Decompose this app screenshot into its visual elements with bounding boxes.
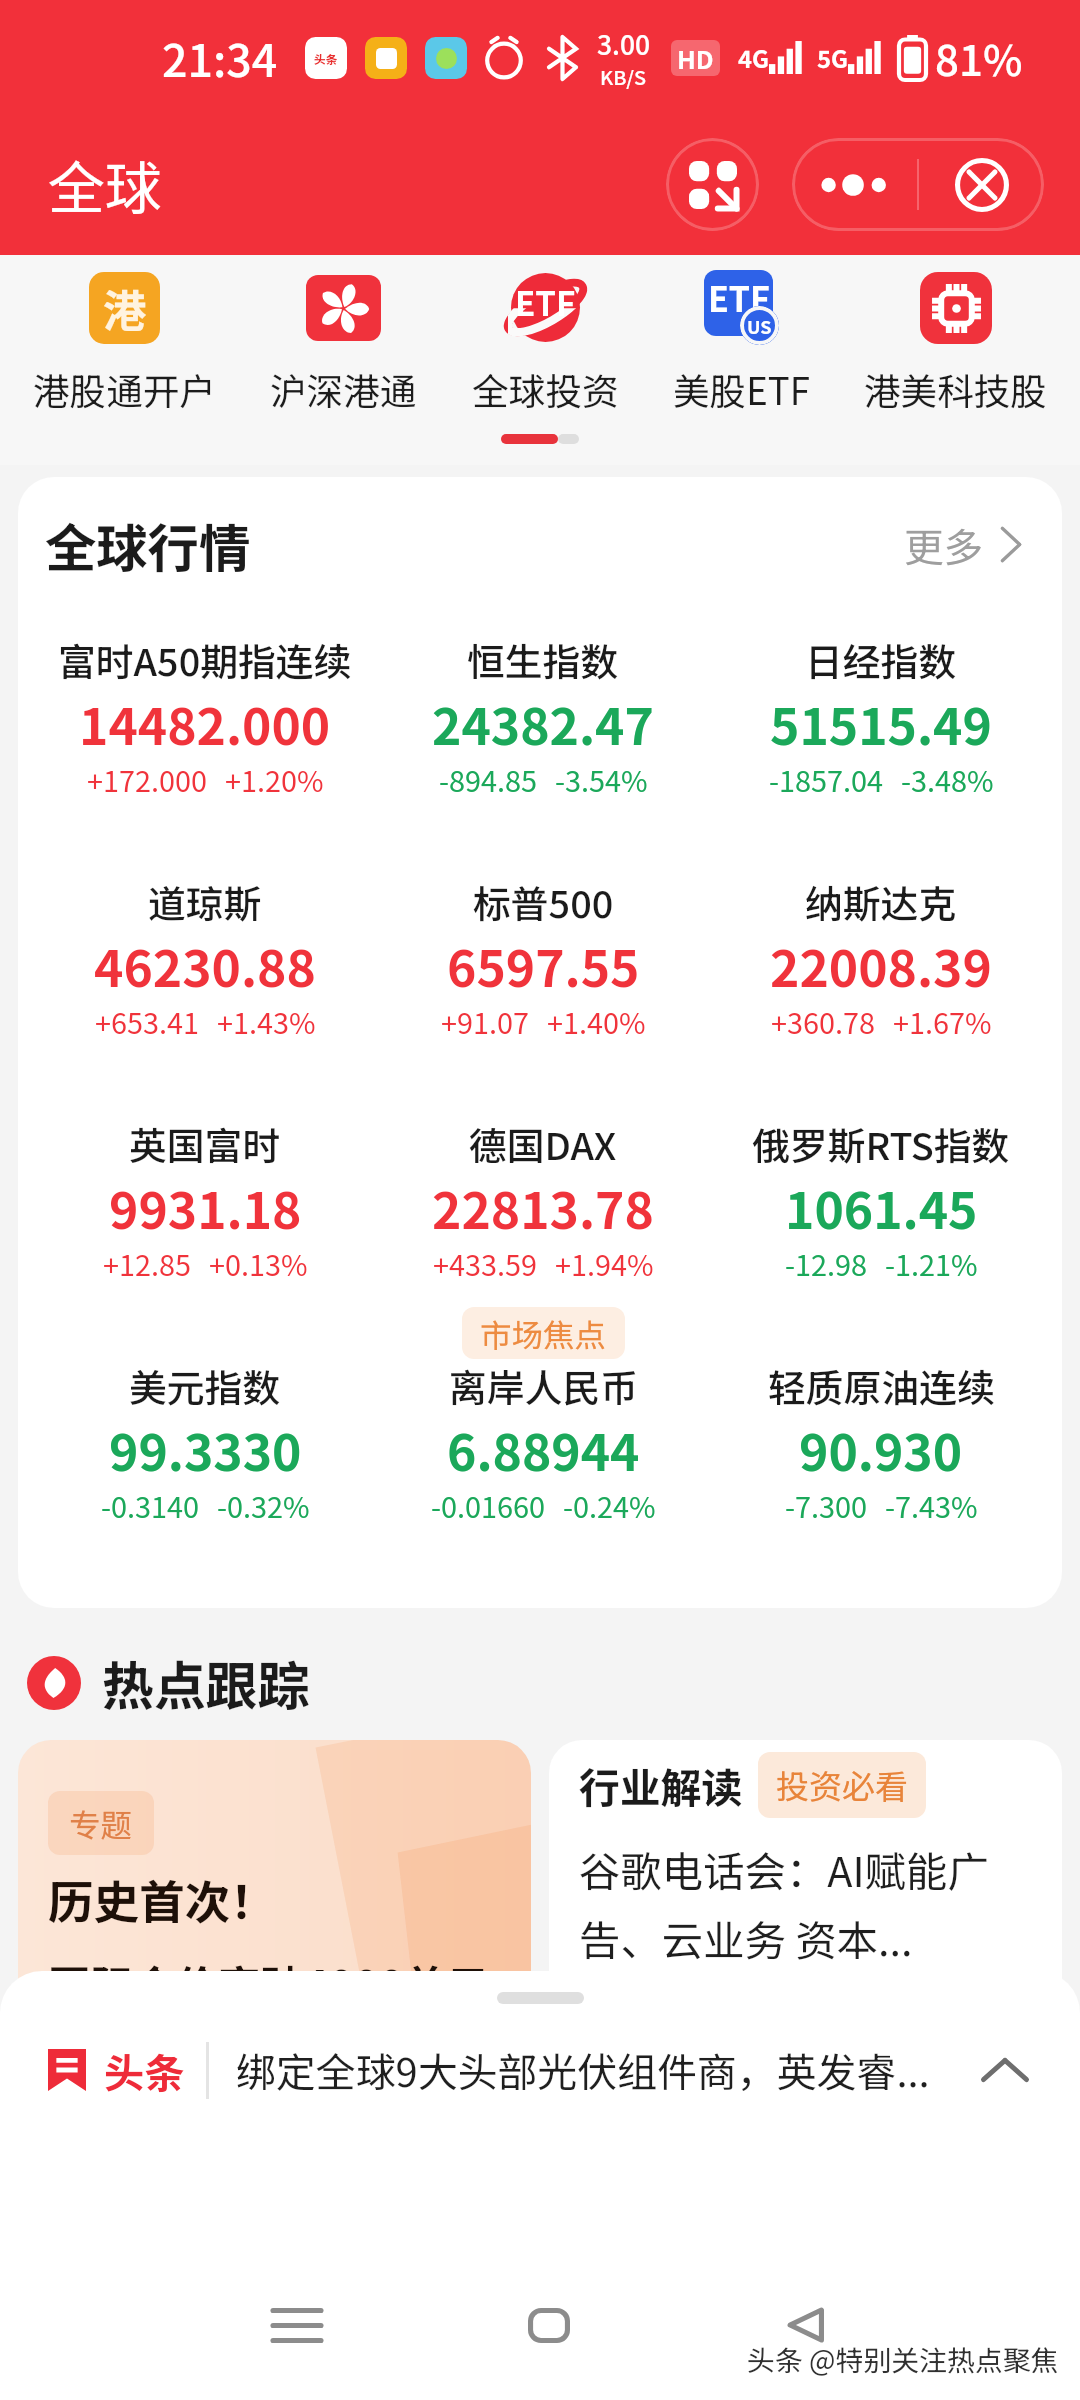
staticText: 22813.78 — [432, 1171, 654, 1243]
staticText: 美股ETF — [673, 363, 810, 416]
button[interactable]: 英国富时 — [36, 1116, 374, 1285]
staticText: 更多 — [904, 516, 984, 573]
button[interactable]: Close — [919, 138, 1044, 231]
staticText: KB/S — [600, 62, 647, 91]
staticText: 标普500 — [473, 874, 614, 929]
staticText: -7.43% — [885, 1485, 978, 1527]
button[interactable]: 标普500 — [374, 874, 712, 1043]
staticText: -1.21% — [885, 1243, 978, 1285]
staticText: 投资必看 — [776, 1761, 908, 1809]
staticText: 沪深港通 — [270, 363, 417, 416]
staticText: -0.3140 — [101, 1485, 199, 1527]
staticText: 日经指数 — [805, 632, 957, 687]
button[interactable]: 热点跟踪 — [27, 1645, 310, 1720]
staticText: +172.000 — [87, 759, 207, 801]
staticText: -7.300 — [785, 1485, 867, 1527]
staticText: 德国DAX — [469, 1116, 617, 1171]
button[interactable]: 头条 — [0, 2037, 1080, 2103]
staticText: 热点跟踪 — [102, 1645, 310, 1720]
button[interactable]: Back — [759, 2283, 849, 2367]
button[interactable]: More options — [792, 138, 917, 231]
staticText: 谷歌电话会：AI赋能广告、云业务 资本... — [579, 1839, 1044, 1967]
staticText: 港美科技股 — [864, 363, 1047, 416]
staticText: 3.00 — [597, 24, 650, 62]
button[interactable]: 离岸人民币 — [374, 1358, 712, 1527]
button[interactable]: 德国DAX — [374, 1116, 712, 1285]
button[interactable]: 纳斯达克 — [712, 874, 1050, 1043]
button[interactable]: 俄罗斯RTS指数 — [712, 1116, 1050, 1285]
button[interactable]: 沪深港通 — [261, 270, 426, 416]
staticText: 4G — [738, 41, 769, 75]
staticText: -894.85 — [439, 759, 537, 801]
staticText: 美元指数 — [129, 1358, 281, 1413]
staticText: -3.48% — [901, 759, 994, 801]
staticText: -1857.04 — [769, 759, 883, 801]
staticText: +1.67% — [893, 1001, 992, 1043]
staticText: +0.13% — [209, 1243, 308, 1285]
button[interactable]: 美元指数 — [36, 1358, 374, 1527]
staticText: -12.98 — [785, 1243, 867, 1285]
staticText: +1.20% — [225, 759, 324, 801]
staticText: 恒生指数 — [467, 632, 619, 687]
staticText: 英国富时 — [129, 1116, 281, 1171]
staticText: +433.59 — [433, 1243, 537, 1285]
button[interactable]: Home — [504, 2283, 594, 2367]
button[interactable]: 港美科技股 — [855, 270, 1056, 416]
button[interactable]: 专题 — [18, 1740, 531, 2115]
staticText: 头条 @特别关注热点聚焦 — [747, 2339, 1059, 2379]
staticText: 绑定全球9大头部光伏组件商，英发睿... — [236, 2041, 954, 2099]
staticText: -3.54% — [555, 759, 648, 801]
staticText: 6597.55 — [447, 929, 640, 1001]
staticText: +653.41 — [95, 1001, 199, 1043]
button[interactable]: 日经指数 — [712, 632, 1050, 801]
button[interactable]: 富时A50期指连续 — [36, 632, 374, 801]
staticText: 道琼斯 — [148, 874, 262, 929]
staticText: 全球投资 — [472, 363, 619, 416]
staticText: 港股通开户 — [33, 363, 216, 416]
staticText: 5G — [817, 41, 848, 75]
staticText: -0.32% — [217, 1485, 310, 1527]
button[interactable]: Recent apps — [252, 2283, 342, 2367]
button[interactable]: 行业解读 — [549, 1740, 1062, 2115]
staticText: 全球 — [48, 143, 162, 226]
button[interactable]: 恒生指数 — [374, 632, 712, 801]
staticText: 行业解读 — [579, 1756, 743, 1815]
staticText: 头条 — [314, 50, 338, 67]
button[interactable]: 道琼斯 — [36, 874, 374, 1043]
staticText: 轻质原油连续 — [768, 1358, 995, 1413]
button[interactable]: ETF — [664, 270, 819, 416]
staticText: 51515.49 — [770, 687, 992, 759]
staticText: 市场焦点 — [480, 1310, 607, 1356]
staticText: 俄罗斯RTS指数 — [752, 1116, 1010, 1171]
staticText: 离岸人民币 — [449, 1358, 638, 1413]
staticText: 富时A50期指连续 — [58, 632, 352, 687]
staticText: 24382.47 — [432, 687, 654, 759]
staticText: US — [747, 313, 772, 339]
staticText: -0.01660 — [431, 1485, 545, 1527]
staticText: 1061.45 — [785, 1171, 978, 1243]
staticText: HD — [677, 40, 714, 76]
staticText: -0.24% — [563, 1485, 656, 1527]
staticText: +1.94% — [555, 1243, 654, 1285]
button[interactable]: 港 — [24, 270, 225, 416]
button[interactable]: 轻质原油连续 — [712, 1358, 1050, 1527]
staticText: 纳斯达克 — [805, 874, 957, 929]
staticText: ETF — [515, 278, 576, 326]
button[interactable]: 全球行情 — [18, 477, 1062, 593]
button[interactable]: ETF — [463, 270, 628, 416]
staticText: 21:34 — [162, 25, 278, 90]
button[interactable]: Mini program panel — [666, 138, 759, 231]
staticText: 历史首次！ — [48, 1866, 276, 1932]
staticText: +12.85 — [103, 1243, 191, 1285]
staticText: 9931.18 — [109, 1171, 302, 1243]
staticText: +91.07 — [441, 1001, 529, 1043]
staticText: 22008.39 — [770, 929, 992, 1001]
staticText: 港 — [103, 277, 147, 340]
staticText: 头条 — [104, 2041, 185, 2099]
staticText: 6.88944 — [447, 1413, 640, 1485]
staticText: 46230.88 — [94, 929, 316, 1001]
staticText: +1.43% — [217, 1001, 316, 1043]
button[interactable]: Collapse — [972, 2037, 1038, 2103]
staticText: 专题 — [69, 1800, 133, 1846]
staticText: 99.3330 — [109, 1413, 302, 1485]
